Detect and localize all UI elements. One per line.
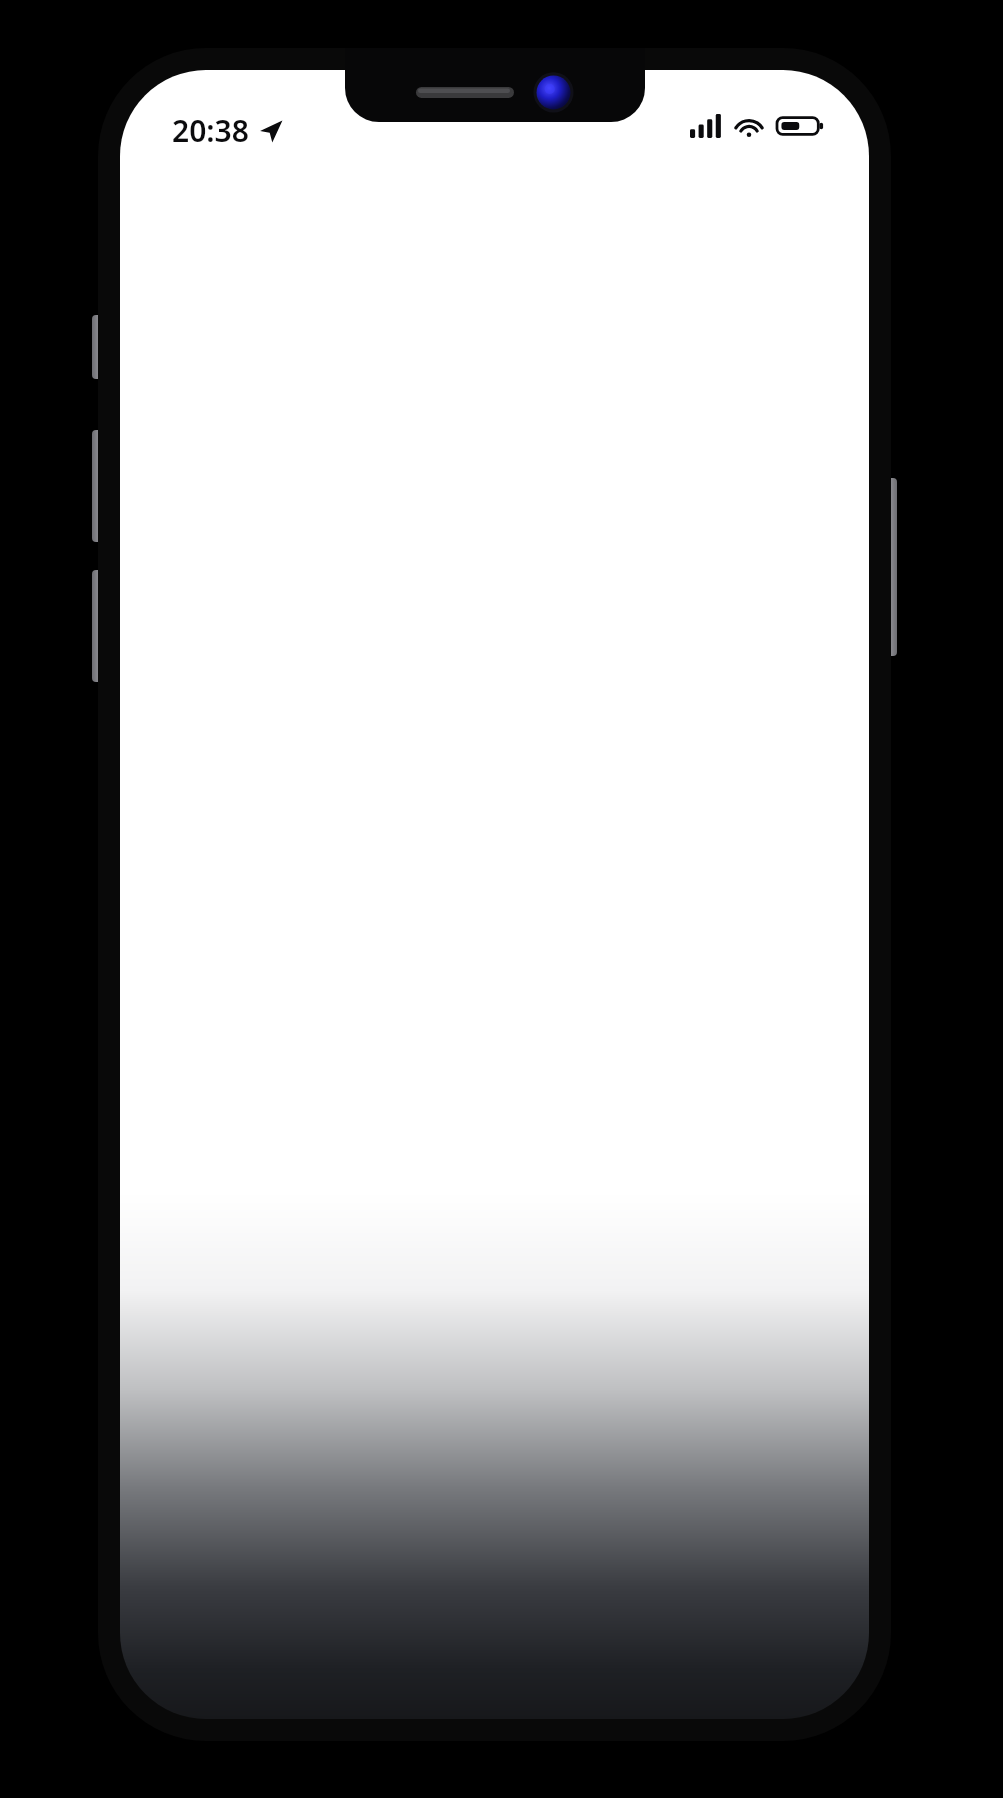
button[interactable]: Power (888, 478, 897, 656)
staticText: 20:38 (172, 110, 249, 151)
button[interactable]: Volume down (92, 570, 101, 682)
button[interactable]: Volume up (92, 430, 101, 542)
button[interactable]: Mute switch (92, 315, 101, 379)
